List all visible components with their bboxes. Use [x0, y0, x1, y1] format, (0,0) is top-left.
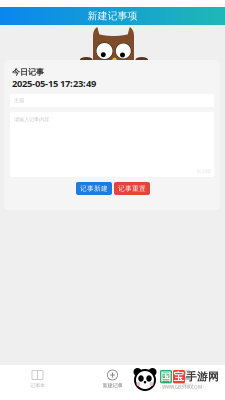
staticText: 记事本	[30, 382, 45, 389]
staticText: 记事重置	[118, 184, 146, 193]
staticText: 新建记事	[102, 382, 122, 389]
staticText: 我的	[182, 382, 192, 389]
staticText: 主题	[14, 97, 24, 104]
staticText: 记事新建	[80, 184, 108, 193]
staticText: 2025-05-15 17:23:49	[12, 77, 96, 90]
button[interactable]: 新建记事	[75, 370, 150, 389]
button[interactable]: 我的	[150, 370, 225, 389]
staticText: 今日记事	[12, 67, 44, 77]
button[interactable]: 记事新建	[76, 182, 112, 195]
staticText: 0/200	[197, 168, 211, 174]
staticText: 请输入记事内容	[14, 116, 49, 123]
staticText: 新建记事项	[87, 10, 137, 22]
staticText: 国	[160, 370, 171, 383]
staticText: 手游网	[186, 370, 219, 383]
button[interactable]: 记事本	[0, 370, 75, 389]
staticText: 宝	[173, 370, 184, 383]
staticText: · WWW.GB315.COM ·	[160, 384, 204, 390]
button[interactable]: 记事重置	[114, 182, 150, 195]
